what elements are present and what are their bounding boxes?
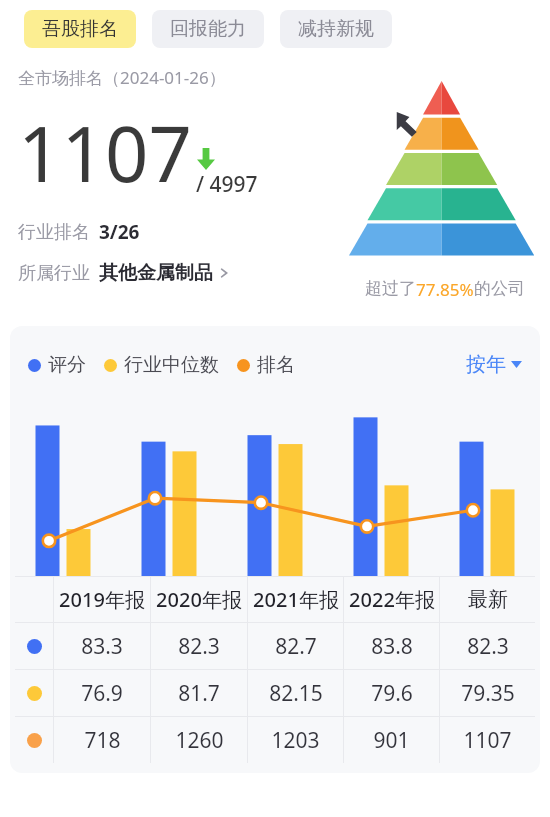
staticText: 83.3 bbox=[81, 632, 123, 661]
staticText: 1203 bbox=[271, 726, 320, 755]
staticText: 77.85% bbox=[416, 278, 474, 301]
staticText: 718 bbox=[84, 726, 121, 755]
button[interactable]: 回报能力 bbox=[152, 10, 264, 48]
staticText: 1260 bbox=[175, 726, 224, 755]
staticText: 81.7 bbox=[178, 679, 220, 708]
staticText: 回报能力 bbox=[170, 17, 246, 41]
staticText: 2019年报 bbox=[59, 586, 145, 613]
staticText: 82.15 bbox=[269, 679, 323, 708]
staticText: 所属行业 bbox=[18, 262, 90, 285]
staticText: 82.3 bbox=[178, 632, 220, 661]
staticText: 2022年报 bbox=[349, 586, 435, 613]
staticText: 评分 bbox=[48, 353, 86, 377]
staticText: 排名 bbox=[257, 353, 295, 377]
staticText: 1107 bbox=[463, 726, 512, 755]
staticText: 79.6 bbox=[371, 679, 413, 708]
staticText: / 4997 bbox=[196, 170, 258, 199]
staticText: 76.9 bbox=[81, 679, 123, 708]
button[interactable]: 减持新规 bbox=[280, 10, 392, 48]
staticText: 82.7 bbox=[275, 632, 317, 661]
staticText: 按年 bbox=[466, 352, 506, 377]
staticText: 吾股排名 bbox=[42, 17, 118, 41]
staticText: 2020年报 bbox=[156, 586, 242, 613]
staticText: 其他金属制品 bbox=[99, 261, 213, 285]
staticText: 79.35 bbox=[461, 679, 515, 708]
staticText: 全市场排名（2024-01-26） bbox=[18, 66, 226, 89]
button[interactable]: 按年 bbox=[466, 352, 522, 377]
staticText: 超过了 bbox=[365, 278, 416, 299]
staticText: 82.3 bbox=[467, 632, 509, 661]
staticText: 行业中位数 bbox=[124, 353, 219, 377]
button[interactable]: 所属行业 bbox=[18, 261, 230, 285]
button[interactable]: 吾股排名 bbox=[24, 10, 136, 48]
staticText: 最新 bbox=[468, 587, 508, 612]
staticText: 2021年报 bbox=[253, 586, 339, 613]
staticText: 83.8 bbox=[371, 632, 413, 661]
staticText: 901 bbox=[373, 726, 410, 755]
staticText: 1107 bbox=[18, 101, 192, 205]
staticText: 行业排名 bbox=[18, 221, 90, 244]
staticText: 3/26 bbox=[99, 219, 140, 245]
staticText: 的公司 bbox=[474, 278, 525, 299]
staticText: 减持新规 bbox=[298, 17, 374, 41]
